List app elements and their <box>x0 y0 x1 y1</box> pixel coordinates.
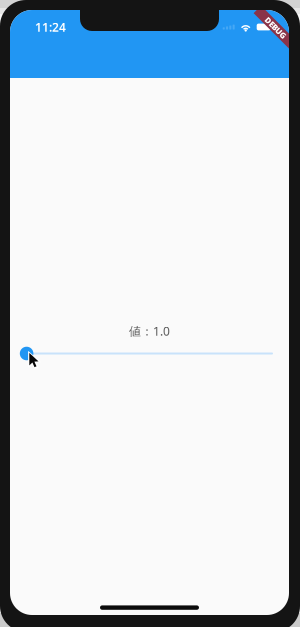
staticText: DEBUG <box>262 22 289 33</box>
staticText: 値：1.0 <box>129 323 170 339</box>
button[interactable] <box>20 341 282 365</box>
staticText: 11:24 <box>35 19 66 35</box>
button[interactable]: 値：1.0 <box>129 323 170 339</box>
